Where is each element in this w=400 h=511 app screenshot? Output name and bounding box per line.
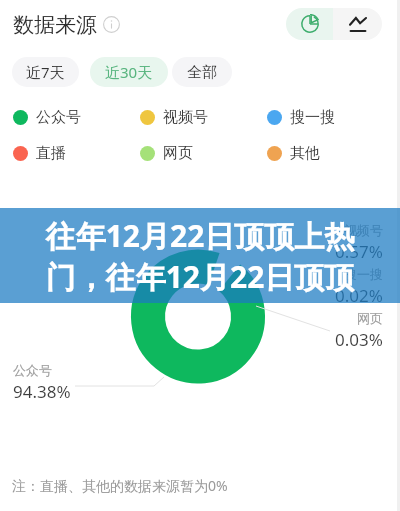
staticText: 公众号 bbox=[36, 108, 81, 127]
button[interactable]: Line chart view bbox=[333, 8, 382, 40]
staticText: 0.03% bbox=[335, 328, 383, 351]
staticText: 其他 bbox=[290, 144, 320, 163]
button[interactable]: 其他 bbox=[267, 143, 320, 163]
button[interactable]: 搜一搜 bbox=[267, 107, 335, 127]
staticText: 视频号 bbox=[344, 222, 383, 238]
staticText: 网页 bbox=[357, 310, 383, 326]
staticText: 数据来源 bbox=[13, 12, 97, 38]
staticText: 视频号 bbox=[163, 108, 208, 127]
staticText: 全部 bbox=[187, 63, 217, 82]
button[interactable]: 近7天 bbox=[12, 57, 79, 87]
staticText: 网页 bbox=[163, 144, 193, 163]
staticText: 94.38% bbox=[13, 380, 71, 403]
staticText: 搜一搜 bbox=[344, 266, 383, 282]
staticText: 0.02% bbox=[335, 284, 383, 307]
staticText: 近7天 bbox=[26, 62, 65, 82]
staticText: 往年12月22日顶顶上热门，往年12月22日顶顶 bbox=[40, 215, 360, 297]
button[interactable]: 全部 bbox=[172, 57, 232, 87]
staticText: 注：直播、其他的数据来源暂为0% bbox=[12, 476, 228, 495]
button[interactable]: Info bbox=[103, 16, 120, 33]
button[interactable]: 近30天 bbox=[90, 57, 168, 87]
button[interactable]: 视频号 bbox=[140, 107, 208, 127]
button[interactable]: 网页 bbox=[140, 143, 193, 163]
staticText: 公众号 bbox=[13, 362, 52, 378]
button[interactable]: 直播 bbox=[13, 143, 66, 163]
staticText: 0.57% bbox=[335, 240, 383, 263]
staticText: 近30天 bbox=[105, 62, 153, 82]
staticText: 直播 bbox=[36, 144, 66, 163]
button[interactable]: Pie chart view bbox=[286, 8, 333, 40]
staticText: 搜一搜 bbox=[290, 108, 335, 127]
button[interactable]: 公众号 bbox=[13, 107, 81, 127]
